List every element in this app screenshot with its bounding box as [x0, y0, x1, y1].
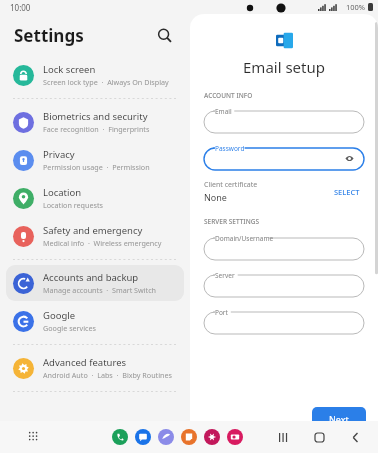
button[interactable]: Next	[312, 407, 366, 431]
staticText: SELECT	[334, 187, 360, 197]
staticText: Password	[215, 144, 245, 153]
button[interactable]: Location	[6, 180, 184, 216]
button[interactable]: Lock screen	[6, 57, 184, 93]
staticText: Google services	[43, 323, 97, 333]
button[interactable]: Accounts and backup	[6, 265, 184, 301]
button[interactable]: Password	[204, 144, 364, 170]
staticText: Email	[215, 107, 232, 116]
staticText: Location requests	[43, 200, 103, 210]
button[interactable]: Domain/Username	[204, 234, 364, 260]
button[interactable]: All apps	[24, 427, 44, 447]
staticText: Email setup	[243, 57, 325, 77]
staticText: Location	[43, 186, 82, 199]
button[interactable]: Privacy	[6, 142, 184, 178]
button[interactable]: Phone	[112, 429, 128, 445]
staticText: Lock screen	[43, 63, 96, 76]
staticText: Accounts and backup	[43, 271, 139, 284]
staticText: Android Auto · Labs · Bixby Routines	[43, 370, 173, 380]
staticText: Domain/Username	[215, 234, 274, 243]
button[interactable]: Email	[204, 107, 364, 133]
staticText: None	[204, 191, 227, 203]
button[interactable]: Advanced features	[6, 350, 184, 386]
button[interactable]: Home	[310, 428, 328, 446]
button[interactable]: Notes	[181, 429, 197, 445]
other: Show password	[345, 154, 354, 163]
staticText: Screen lock type · Always On Display	[43, 77, 169, 87]
staticText: 10:00	[10, 2, 31, 13]
staticText: Port	[215, 308, 228, 317]
staticText: Privacy	[43, 148, 75, 161]
button[interactable]: SELECT	[330, 184, 364, 200]
button[interactable]: Search settings	[152, 23, 176, 47]
staticText: Server	[215, 271, 235, 280]
button[interactable]: Back	[346, 428, 364, 446]
staticText: Client certificate	[204, 180, 258, 190]
staticText: ACCOUNT INFO	[204, 91, 253, 100]
staticText: Medical info · Wireless emergency alerts	[43, 238, 177, 248]
staticText: Safety and emergency	[43, 224, 143, 237]
button[interactable]: Camera	[227, 429, 243, 445]
button[interactable]: Gallery	[204, 429, 220, 445]
button[interactable]: Messages	[135, 429, 151, 445]
staticText: Next	[329, 413, 349, 425]
staticText: Manage accounts · Smart Switch	[43, 285, 157, 295]
button[interactable]: Safety and emergency	[6, 218, 184, 254]
staticText: 100%	[346, 2, 366, 12]
staticText: Advanced features	[43, 356, 127, 369]
staticText: Face recognition · Fingerprints	[43, 124, 150, 134]
staticText: Google	[43, 309, 76, 322]
staticText: Biometrics and security	[43, 110, 148, 123]
button[interactable]: Internet	[158, 429, 174, 445]
button[interactable]: Server	[204, 271, 364, 297]
staticText: SERVER SETTINGS	[204, 217, 259, 226]
button[interactable]: Biometrics and security	[6, 104, 184, 140]
staticText: Settings	[14, 24, 84, 47]
button[interactable]: Port	[204, 308, 364, 334]
staticText: Permission usage · Permission manager	[43, 162, 177, 172]
button[interactable]: Recents	[274, 428, 292, 446]
button[interactable]: Google	[6, 303, 184, 339]
